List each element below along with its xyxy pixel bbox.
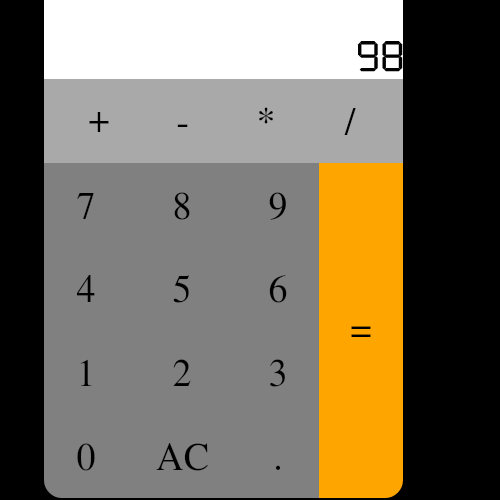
button[interactable]: 6: [227, 246, 319, 330]
button[interactable]: 9: [227, 163, 319, 246]
staticText: 8: [172, 189, 192, 227]
button[interactable]: 3: [227, 330, 319, 414]
button[interactable]: 2: [135, 330, 227, 414]
button[interactable]: *: [224, 79, 308, 163]
button[interactable]: -: [140, 79, 224, 163]
other: Result 98: [358, 41, 402, 71]
staticText: 6: [268, 272, 288, 310]
staticText: *: [256, 104, 276, 142]
staticText: .: [273, 440, 283, 478]
button[interactable]: 1: [44, 330, 135, 414]
button[interactable]: .: [227, 414, 319, 498]
staticText: 4: [76, 272, 96, 310]
staticText: 9: [268, 189, 288, 227]
staticText: AC: [156, 440, 209, 478]
button[interactable]: 5: [135, 246, 227, 330]
staticText: 1: [76, 356, 96, 394]
staticText: 0: [76, 440, 96, 478]
staticText: 2: [172, 356, 192, 394]
button[interactable]: 8: [135, 163, 227, 246]
button[interactable]: AC: [135, 414, 227, 498]
staticText: 3: [268, 356, 288, 394]
button[interactable]: 0: [44, 414, 135, 498]
button[interactable]: +: [57, 79, 140, 163]
button[interactable]: 4: [44, 246, 135, 330]
staticText: /: [344, 105, 356, 143]
staticText: +: [88, 102, 110, 140]
staticText: 5: [172, 272, 192, 310]
staticText: =: [350, 312, 372, 350]
button[interactable]: /: [308, 79, 392, 163]
staticText: -: [176, 105, 189, 143]
staticText: 7: [76, 189, 96, 227]
button[interactable]: =: [319, 163, 403, 498]
button[interactable]: 7: [44, 163, 135, 246]
